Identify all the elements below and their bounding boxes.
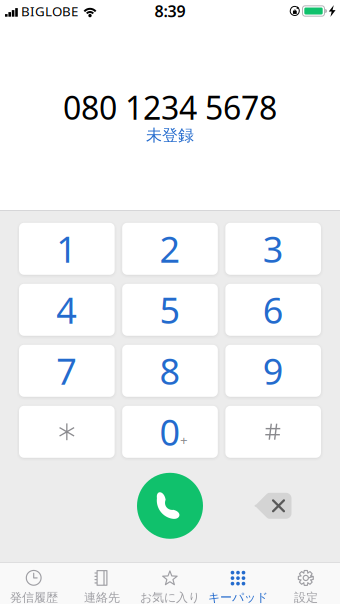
button[interactable]: 連絡先 — [68, 563, 136, 604]
button[interactable] — [19, 406, 115, 458]
staticText: 0 — [159, 408, 180, 456]
button[interactable]: 3 — [225, 223, 321, 275]
button[interactable]: お気に入り — [136, 563, 204, 604]
staticText: 1 — [56, 225, 77, 273]
staticText: 8 — [159, 347, 180, 395]
staticText: 連絡先 — [84, 590, 120, 604]
staticText: 発信履歴 — [10, 590, 58, 604]
button[interactable]: 7 — [19, 345, 115, 397]
button[interactable]: 0 — [122, 406, 218, 458]
button[interactable]: 設定 — [272, 563, 340, 604]
button[interactable]: Call — [137, 473, 203, 539]
staticText: BIGLOBE — [21, 2, 78, 20]
staticText: 6 — [263, 286, 284, 334]
staticText: お気に入り — [140, 590, 200, 604]
button[interactable]: 発信履歴 — [0, 563, 68, 604]
staticText: 9 — [263, 347, 284, 395]
staticText: 7 — [56, 347, 77, 395]
button[interactable]: 2 — [122, 223, 218, 275]
button[interactable]: 6 — [225, 284, 321, 336]
staticText: 8:39 — [154, 0, 185, 22]
staticText: 080 1234 5678 — [63, 86, 277, 128]
staticText: 未登録 — [146, 125, 194, 145]
staticText: 3 — [263, 225, 284, 273]
button[interactable]: 9 — [225, 345, 321, 397]
staticText: + — [180, 431, 188, 449]
staticText: 5 — [159, 286, 180, 334]
staticText: 設定 — [294, 590, 318, 604]
button[interactable]: 8 — [122, 345, 218, 397]
button[interactable]: Delete — [246, 484, 300, 528]
staticText: キーパッド — [208, 590, 268, 604]
button[interactable]: 4 — [19, 284, 115, 336]
button[interactable]: キーパッド — [204, 563, 272, 604]
button[interactable]: 1 — [19, 223, 115, 275]
staticText: 2 — [159, 225, 180, 273]
staticText: 4 — [56, 286, 77, 334]
button[interactable] — [225, 406, 321, 458]
button[interactable]: 5 — [122, 284, 218, 336]
